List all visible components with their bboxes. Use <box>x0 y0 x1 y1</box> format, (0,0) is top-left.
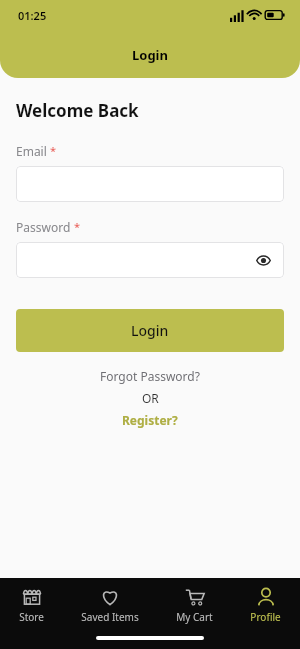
staticText: Login <box>131 321 169 340</box>
staticText: * <box>74 219 81 234</box>
button[interactable]: Forgot Password? <box>94 366 206 386</box>
staticText: Store <box>19 610 44 624</box>
button[interactable]: Store <box>15 585 48 626</box>
staticText: Password <box>16 219 71 235</box>
staticText: Saved Items <box>81 610 139 624</box>
staticText: * <box>50 143 57 158</box>
button[interactable]: My Cart <box>172 585 217 626</box>
staticText: Profile <box>250 610 281 624</box>
button[interactable]: Show password <box>252 249 274 271</box>
button[interactable]: Profile <box>246 585 285 626</box>
staticText: Register? <box>122 412 178 428</box>
staticText: Email <box>16 143 47 159</box>
button[interactable]: Login <box>16 309 284 352</box>
button[interactable]: Saved Items <box>77 585 143 626</box>
button[interactable]: Register? <box>116 410 184 430</box>
staticText: Welcome Back <box>16 99 139 122</box>
button[interactable]: Show password <box>16 242 284 278</box>
button[interactable] <box>16 166 284 202</box>
staticText: Login <box>132 46 168 64</box>
staticText: Forgot Password? <box>100 368 200 384</box>
staticText: My Cart <box>176 610 213 624</box>
staticText: 01:25 <box>18 8 47 23</box>
staticText: OR <box>142 390 159 406</box>
